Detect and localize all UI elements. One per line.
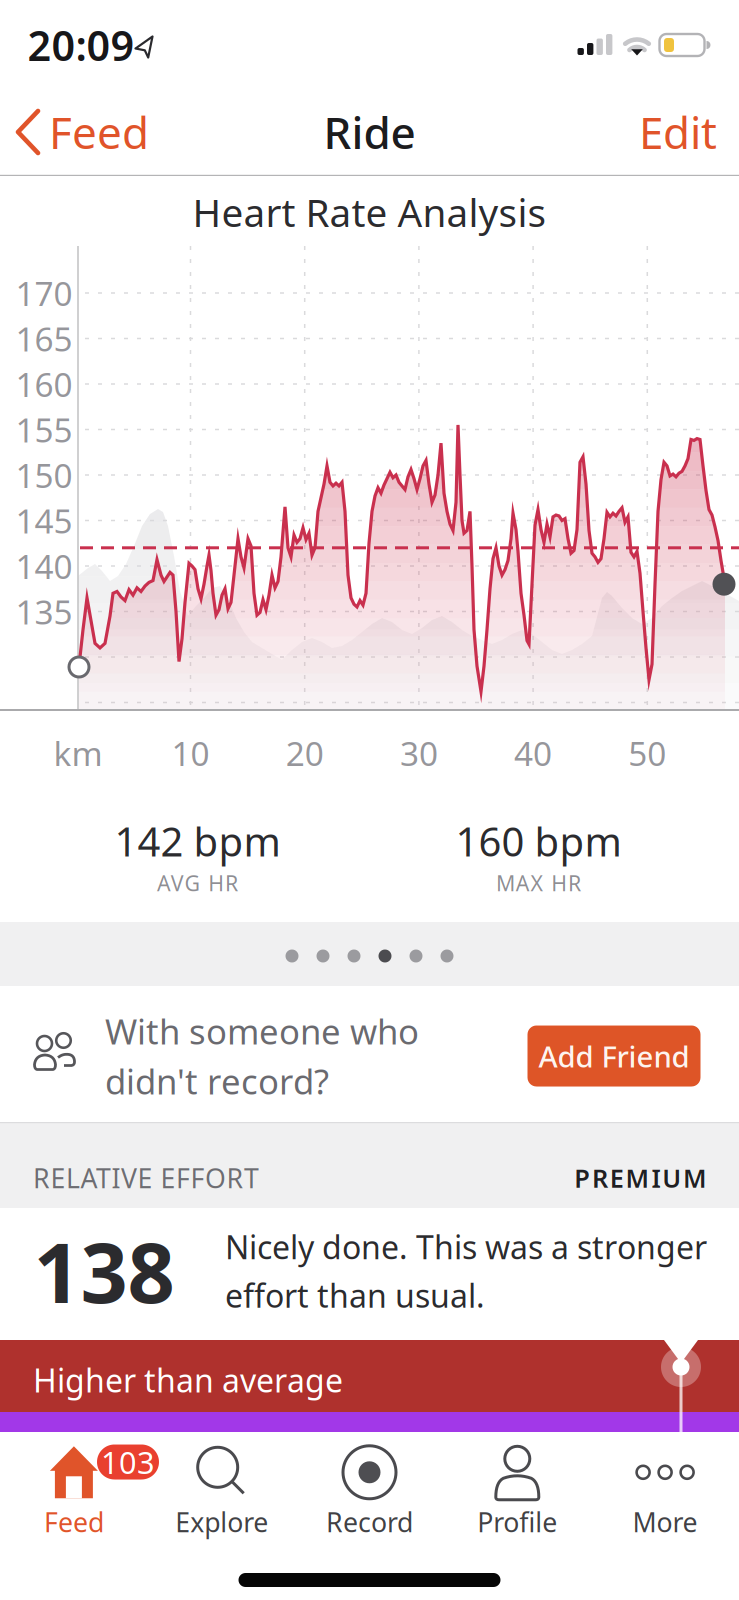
staticText: 103 — [101, 1442, 155, 1482]
staticText: 165 — [15, 316, 72, 361]
button[interactable]: Record — [299, 1436, 439, 1548]
staticText: MAX HR — [496, 869, 581, 897]
staticText: RELATIVE EFFORT — [33, 1160, 259, 1196]
staticText: PREMIUM — [574, 1161, 707, 1195]
staticText: Ride — [323, 103, 415, 161]
staticText: Edit — [639, 103, 717, 161]
staticText: 155 — [15, 407, 72, 452]
staticText: Heart Rate Analysis — [192, 186, 546, 238]
staticText: Feed — [49, 103, 149, 161]
staticText: 170 — [15, 271, 72, 315]
staticText: 150 — [15, 453, 72, 497]
staticText: Nicely done. This was a stronger — [225, 1225, 707, 1268]
staticText: 50 — [628, 731, 666, 775]
staticText: 160 — [15, 362, 72, 406]
staticText: Feed — [44, 1504, 104, 1540]
staticText: 10 — [171, 731, 209, 775]
button[interactable]: Profile — [447, 1436, 587, 1548]
staticText: Explore — [175, 1504, 268, 1540]
button[interactable]: Add Friend — [527, 1025, 700, 1086]
button[interactable]: Edit — [639, 88, 717, 176]
staticText: 145 — [15, 498, 72, 543]
button[interactable]: Explore — [152, 1436, 292, 1548]
staticText: Higher than average — [33, 1359, 343, 1401]
staticText: AVG HR — [157, 869, 238, 897]
staticText: 142 bpm — [114, 814, 280, 867]
button[interactable]: Feed — [4, 1436, 144, 1548]
staticText: 140 — [15, 544, 72, 588]
staticText: 138 — [33, 1216, 174, 1326]
staticText: Profile — [477, 1504, 557, 1540]
staticText: didn't record? — [105, 1058, 329, 1104]
staticText: 40 — [514, 731, 552, 775]
staticText: 135 — [15, 589, 72, 634]
staticText: With someone who — [105, 1008, 419, 1054]
staticText: km — [53, 731, 102, 775]
staticText: 20:09 — [27, 18, 134, 72]
button[interactable]: Feed — [18, 88, 165, 176]
staticText: Add Friend — [538, 1036, 689, 1075]
staticText: 20 — [286, 731, 324, 775]
staticText: 30 — [400, 731, 438, 775]
staticText: More — [633, 1504, 698, 1540]
staticText: Record — [326, 1504, 413, 1540]
button[interactable]: More — [595, 1436, 735, 1548]
staticText: 160 bpm — [455, 814, 621, 867]
staticText: effort than usual. — [225, 1274, 485, 1316]
